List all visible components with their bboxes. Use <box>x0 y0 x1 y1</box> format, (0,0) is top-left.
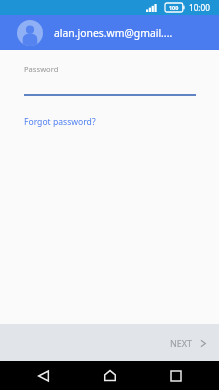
button[interactable]: alan.jones.wm@gmail.... <box>0 15 219 50</box>
staticText: NEXT <box>170 337 193 349</box>
staticText: Forgot password? <box>24 116 96 128</box>
staticText: 100 <box>169 4 179 11</box>
staticText: alan.jones.wm@gmail.... <box>54 26 173 40</box>
button[interactable]: NEXT <box>157 328 219 358</box>
staticText: 10:00 <box>189 2 210 13</box>
staticText: Password <box>24 64 59 74</box>
button[interactable]: Forgot password? <box>24 114 96 130</box>
button[interactable]: Recent apps <box>153 361 199 390</box>
button[interactable]: Home <box>87 361 133 390</box>
button[interactable]: Back <box>20 361 66 390</box>
